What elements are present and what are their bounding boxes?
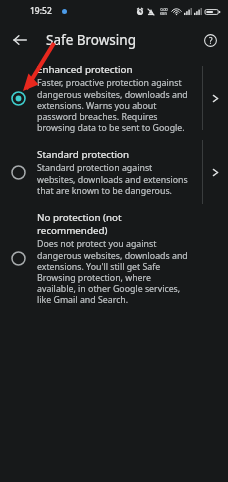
staticText: Standard protection	[37, 148, 130, 161]
staticText: 19:52	[30, 5, 52, 17]
button[interactable]: Help	[197, 27, 223, 53]
staticText: No protection (not recommended)	[37, 211, 190, 237]
staticText: 0.00	[160, 7, 168, 12]
staticText: Does not protect you against dangerous w…	[37, 238, 190, 305]
button[interactable]: Back	[6, 26, 34, 54]
staticText: Safe Browsing	[46, 31, 136, 49]
button[interactable]: No protection (not recommended)	[0, 204, 228, 312]
button[interactable]: More details about Enhanced protection	[196, 66, 228, 130]
button[interactable]: Standard protection	[0, 140, 228, 204]
staticText: KB/S	[160, 12, 167, 16]
staticText: Standard protection against websites, do…	[37, 162, 190, 196]
staticText: Enhanced protection	[37, 63, 133, 76]
staticText: ?	[209, 35, 213, 46]
button[interactable]: Enhanced protection	[0, 56, 228, 140]
staticText: Faster, proactive protection against dan…	[37, 77, 190, 133]
button[interactable]: More details about Standard protection	[196, 140, 228, 204]
